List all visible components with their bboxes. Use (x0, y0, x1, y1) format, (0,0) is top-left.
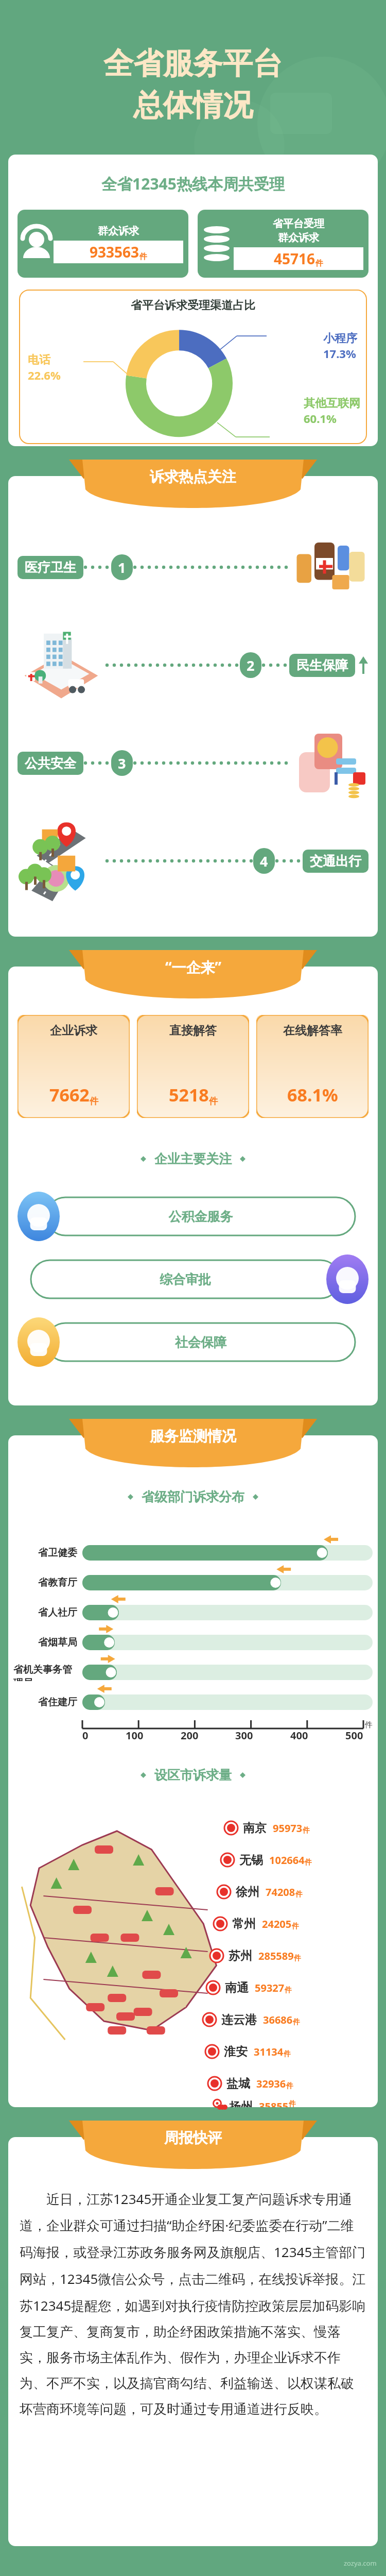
staticText: 省平台诉求受理渠道占比 (20, 298, 366, 313)
button[interactable]: 民生保障 (289, 654, 355, 677)
staticText: 500 (345, 1728, 363, 1742)
staticText: 件 (305, 1858, 312, 1867)
staticText: 件 (284, 2049, 291, 2059)
staticText: 95973 (273, 1821, 303, 1835)
staticText: 2 (247, 656, 255, 675)
button[interactable]: 直接解答 (137, 1015, 249, 1118)
staticText: 59327 (255, 1981, 285, 1995)
staticText: 件 (293, 2018, 300, 2027)
button[interactable]: 社会保障 (0, 1316, 386, 1368)
button[interactable]: 连云港 (212, 2004, 382, 2036)
staticText: 省机关事务管理局 (13, 1664, 77, 1681)
button[interactable]: 群众诉求 (17, 210, 188, 278)
staticText: 群众诉求 (98, 225, 139, 238)
staticText: 件 (315, 259, 323, 268)
staticText: 3 (118, 754, 126, 773)
button[interactable]: 淮安 (212, 2036, 382, 2067)
staticText: 无锡 (239, 1853, 263, 1868)
staticText: 总体情况 (133, 87, 253, 124)
staticText: 60.1% (304, 411, 337, 426)
staticText: 102664 (269, 1853, 305, 1867)
staticText: 省级部门诉求分布 (142, 1489, 244, 1505)
staticText: 件 (285, 1986, 292, 1995)
button[interactable]: 企业诉求 (17, 1015, 130, 1118)
staticText: 公共安全 (25, 755, 76, 771)
staticText: 24205 (262, 1917, 292, 1931)
staticText: 件 (294, 1954, 301, 1963)
button[interactable]: 常州 (212, 1908, 382, 1940)
staticText: 小程序 (323, 331, 357, 346)
staticText: 企业诉求 (50, 1023, 97, 1038)
staticText: 淮安 (224, 2044, 248, 2059)
staticText: 设区市诉求量 (154, 1767, 232, 1783)
button[interactable]: 在线解答率 (256, 1015, 369, 1118)
staticText: 件 (292, 1922, 299, 1931)
staticText: 交通出行 (310, 853, 361, 869)
staticText: 件 (295, 1890, 303, 1899)
staticText: 周报快评 (164, 2129, 222, 2147)
staticText: 医疗卫生 (25, 560, 76, 575)
staticText: “一企来” (165, 957, 221, 977)
staticText: 省烟草局 (38, 1636, 77, 1649)
staticText: 公积金服务 (46, 1209, 355, 1225)
button[interactable]: 无锡 (212, 1844, 382, 1876)
button[interactable]: 扬州 (212, 2099, 382, 2107)
staticText: 31134 (254, 2045, 284, 2059)
staticText: 件 (139, 252, 147, 262)
button[interactable]: 公积金服务 (0, 1191, 386, 1242)
staticText: 省教育厅 (38, 1577, 77, 1589)
staticText: 100 (126, 1728, 144, 1742)
staticText: 近日，江苏12345开通企业复工复产问题诉求专用通道，企业群众可通过扫描“助企纾… (20, 2190, 366, 2418)
staticText: 服务监测情况 (150, 1427, 236, 1445)
staticText: 件 (303, 1826, 310, 1835)
staticText: 4 (260, 852, 268, 871)
staticText: 其他互联网 (304, 396, 360, 411)
button[interactable]: 徐州 (212, 1876, 382, 1908)
staticText: 直接解答 (169, 1023, 217, 1038)
staticText: 全省服务平台 (103, 45, 283, 82)
button[interactable]: 南通 (212, 1972, 382, 2004)
staticText: 200 (181, 1728, 199, 1742)
staticText: 南通 (225, 1980, 249, 1995)
staticText: 5218 (169, 1083, 209, 1107)
staticText: 件 (90, 1096, 98, 1107)
other: 省平台受理 群众诉求 (203, 230, 231, 258)
staticText: 300 (235, 1728, 253, 1742)
staticText: 件 (209, 1096, 218, 1107)
staticText: 全省12345热线本周共受理 (8, 173, 378, 194)
staticText: 省人社厅 (38, 1606, 77, 1619)
staticText: 在线解答率 (283, 1023, 342, 1038)
button[interactable]: 苏州 (212, 1940, 382, 1972)
staticText: 933563 (90, 242, 139, 262)
staticText: 徐州 (236, 1885, 259, 1900)
button[interactable]: 南京 (212, 1812, 382, 1844)
staticText: 285589 (258, 1949, 294, 1963)
button[interactable]: 综合审批 (0, 1253, 386, 1305)
staticText: 综合审批 (31, 1272, 340, 1287)
staticText: 企业主要关注 (154, 1151, 232, 1167)
staticText: zozya.com (344, 2558, 377, 2568)
staticText: 南京 (243, 1821, 267, 1836)
staticText: 45716 (274, 249, 315, 268)
button[interactable]: 医疗卫生 (17, 556, 83, 579)
button[interactable]: 交通出行 (303, 850, 369, 873)
button[interactable]: 盐城 (212, 2067, 382, 2099)
staticText: 1 (118, 558, 126, 577)
staticText: 省住建厅 (38, 1696, 77, 1708)
staticText: 17.3% (323, 346, 356, 361)
button[interactable]: 省平台受理 群众诉求 (198, 210, 369, 278)
staticText: 诉求热点关注 (150, 468, 236, 486)
staticText: 苏州 (229, 1948, 252, 1963)
staticText: 件 (286, 2081, 293, 2091)
staticText: 民生保障 (296, 657, 348, 673)
button[interactable]: 公共安全 (17, 752, 83, 775)
other: 公积金服务 (17, 1192, 60, 1241)
staticText: 68.1% (287, 1083, 338, 1107)
staticText: 22.6% (28, 367, 61, 383)
staticText: 件 (365, 1720, 373, 1730)
staticText: 连云港 (221, 2012, 257, 2027)
staticText: 常州 (232, 1917, 256, 1931)
staticText: 35855 (259, 2099, 289, 2107)
other: 综合审批 (326, 1255, 369, 1304)
staticText: 盐城 (226, 2076, 250, 2091)
